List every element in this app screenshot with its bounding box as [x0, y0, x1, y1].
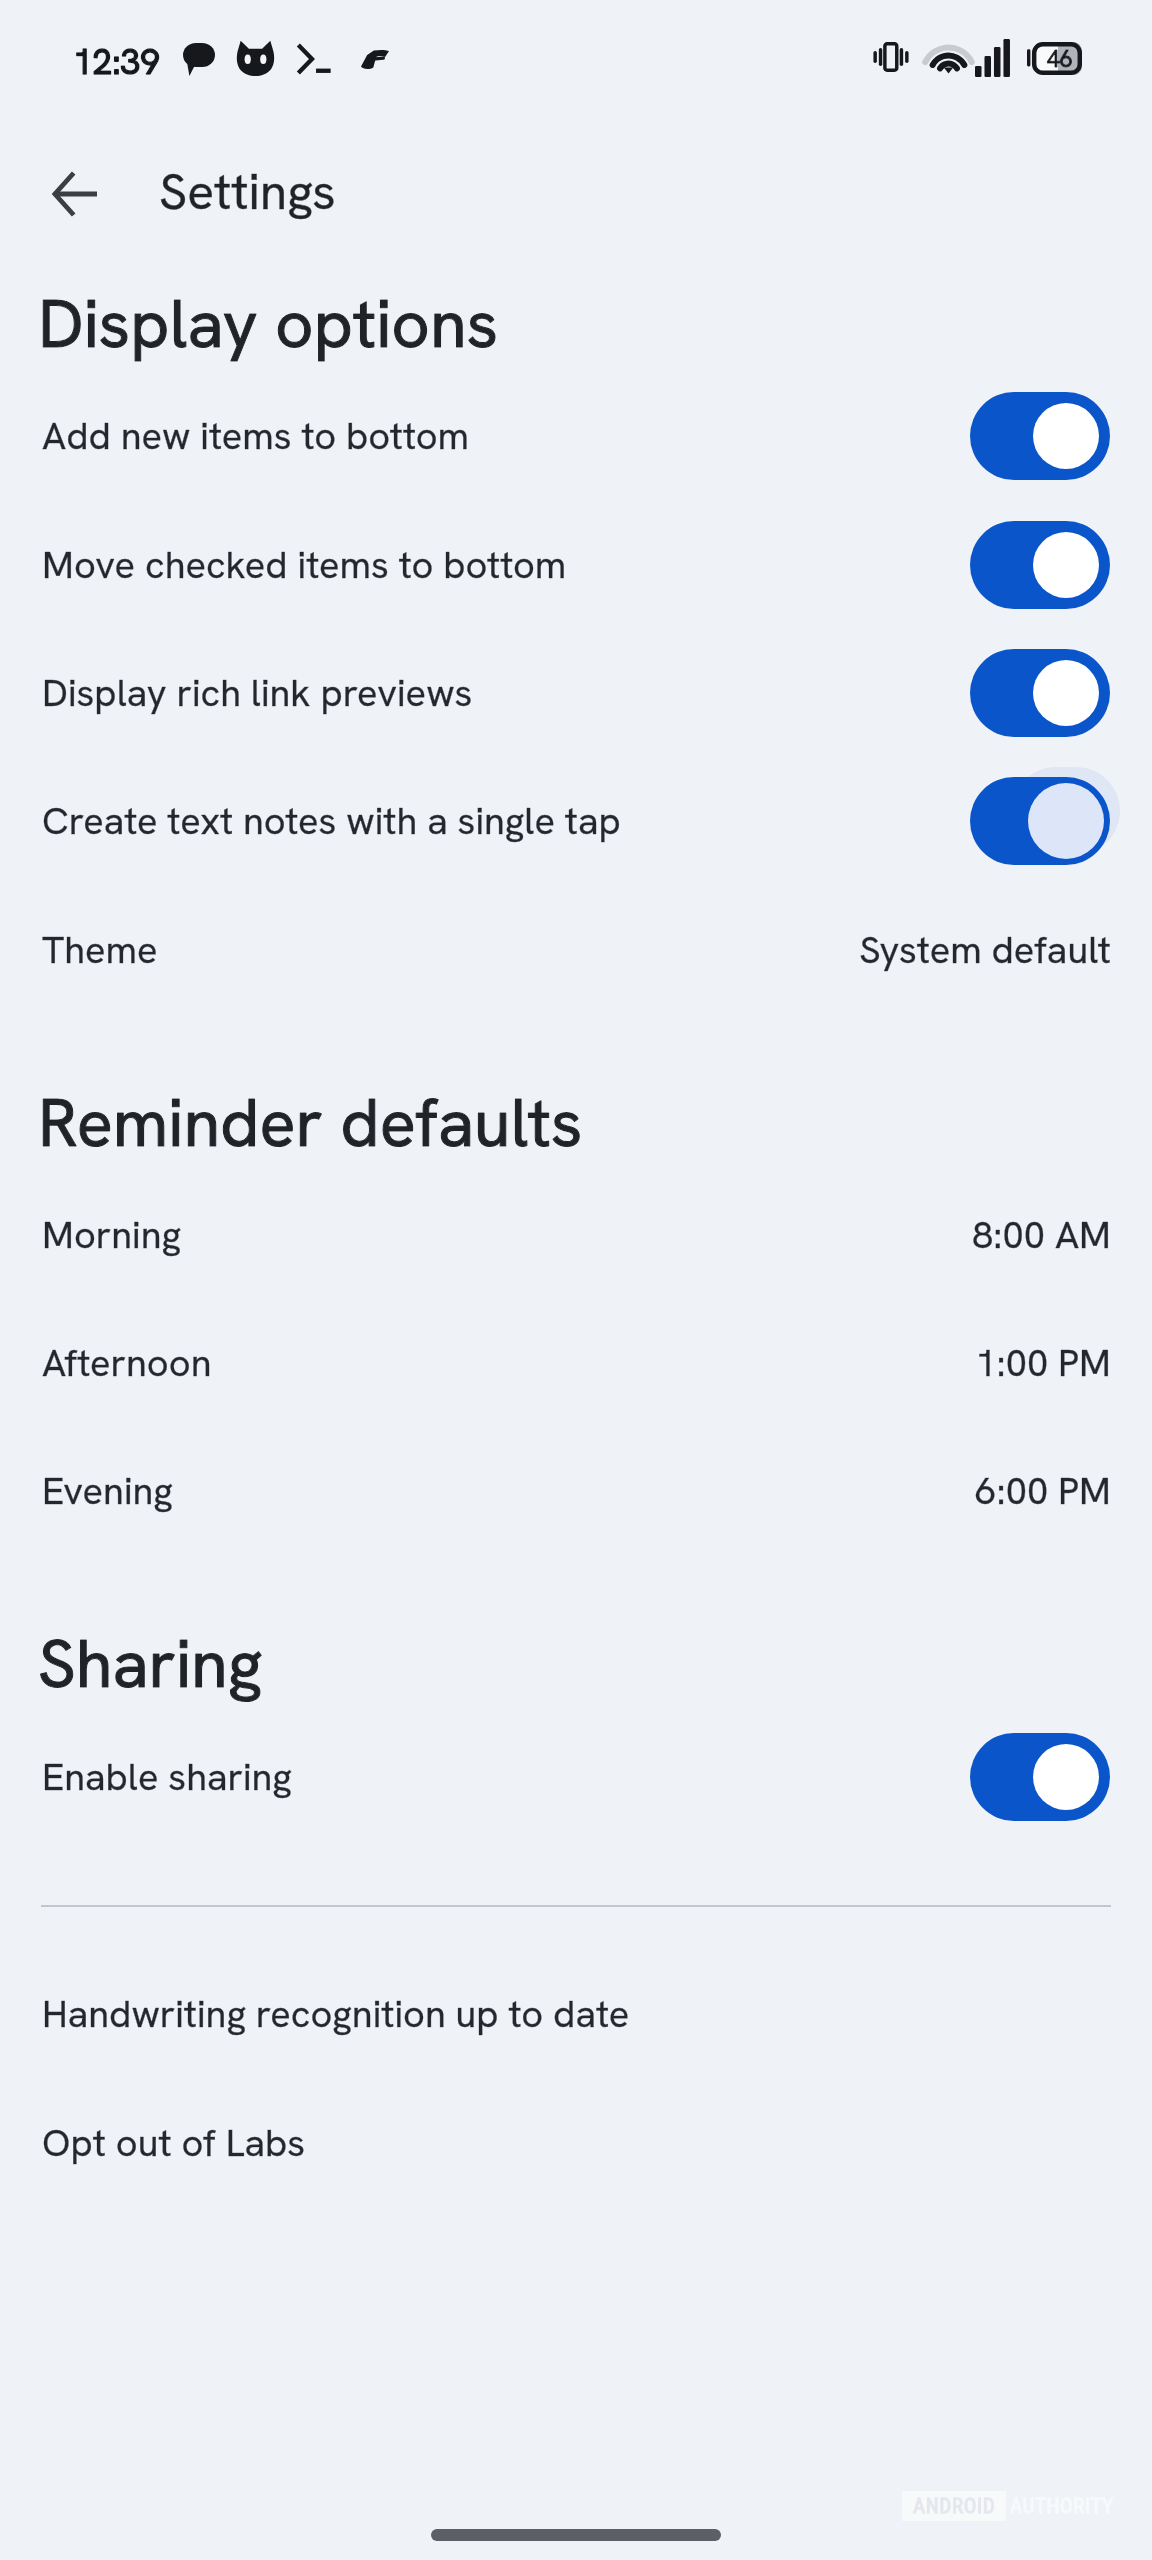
- staticText: Add new items to bottom: [42, 411, 470, 461]
- staticText: System default: [859, 925, 1111, 975]
- button[interactable]: Evening: [0, 1411, 1152, 1539]
- staticText: Reminder defaults: [38, 1079, 583, 1166]
- staticText: System default: [859, 925, 1111, 975]
- staticText: 46: [1047, 44, 1073, 74]
- staticText: Display options: [38, 280, 499, 367]
- staticText: Settings: [159, 159, 336, 224]
- staticText: ANDROID: [913, 2494, 996, 2519]
- staticText: AUTHORITY: [1010, 2494, 1114, 2519]
- staticText: 1:00 PM: [975, 1338, 1111, 1388]
- staticText: 1:00 PM: [975, 1338, 1111, 1388]
- staticText: 6:00 PM: [975, 1466, 1111, 1516]
- staticText: 8:00 AM: [972, 1210, 1111, 1260]
- staticText: 6:00 PM: [975, 1466, 1111, 1516]
- staticText: Move checked items to bottom: [42, 540, 567, 590]
- staticText: Display rich link previews: [42, 668, 473, 718]
- staticText: Sharing: [38, 1620, 263, 1707]
- staticText: Afternoon: [42, 1338, 212, 1388]
- staticText: Move checked items to bottom: [42, 540, 567, 590]
- staticText: 8:00 AM: [972, 1210, 1111, 1260]
- button[interactable]: Morning: [0, 1155, 1152, 1283]
- button[interactable]: Afternoon: [0, 1283, 1152, 1411]
- button[interactable]: Create text notes with a single tap: [0, 741, 1152, 869]
- staticText: Settings: [159, 159, 336, 224]
- staticText: Morning: [42, 1210, 181, 1260]
- button[interactable]: Handwriting recognition up to date: [0, 1934, 1152, 2062]
- staticText: Sharing: [38, 1620, 263, 1707]
- staticText: Handwriting recognition up to date: [42, 1989, 630, 2039]
- staticText: Evening: [42, 1466, 173, 1516]
- staticText: Evening: [42, 1466, 173, 1516]
- button[interactable]: Opt out of Labs: [0, 2063, 1152, 2191]
- staticText: Enable sharing: [42, 1752, 292, 1802]
- staticText: Handwriting recognition up to date: [42, 1989, 630, 2039]
- staticText: Opt out of Labs: [42, 2118, 306, 2168]
- button[interactable]: Move checked items to bottom: [0, 485, 1152, 613]
- staticText: Display options: [38, 280, 499, 367]
- button[interactable]: Back: [20, 139, 130, 249]
- staticText: Opt out of Labs: [42, 2118, 306, 2168]
- staticText: Morning: [42, 1210, 181, 1260]
- button[interactable]: Theme: [0, 870, 1152, 998]
- staticText: Create text notes with a single tap: [42, 796, 621, 846]
- staticText: Theme: [42, 925, 158, 975]
- staticText: Display rich link previews: [42, 668, 473, 718]
- staticText: Afternoon: [42, 1338, 212, 1388]
- button[interactable]: Enable sharing: [0, 1697, 1152, 1825]
- staticText: 12:39: [73, 39, 160, 85]
- staticText: Add new items to bottom: [42, 411, 470, 461]
- button[interactable]: Display rich link previews: [0, 613, 1152, 741]
- button[interactable]: Add new items to bottom: [0, 356, 1152, 484]
- staticText: 12:39: [73, 39, 160, 85]
- staticText: Reminder defaults: [38, 1079, 583, 1166]
- staticText: Enable sharing: [42, 1752, 292, 1802]
- staticText: 46: [1047, 44, 1073, 74]
- staticText: Create text notes with a single tap: [42, 796, 621, 846]
- staticText: Theme: [42, 925, 158, 975]
